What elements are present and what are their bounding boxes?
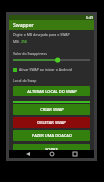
staticText: CRIAR SWAP (40, 107, 64, 112)
staticText: MB: (13, 39, 21, 44)
staticText: 6:49 (86, 15, 93, 20)
staticText: Digite o MB desejado para o SWAP (13, 32, 70, 37)
button[interactable]: Back (23, 150, 33, 158)
staticText: Swapper (13, 22, 34, 29)
staticText: 256 (21, 39, 28, 44)
staticText: ALTERAR LOCAL DO SWAP (27, 89, 77, 94)
button[interactable]: Recents (70, 150, 80, 158)
button[interactable]: SOBRE (13, 144, 90, 155)
button[interactable]: CRIAR SWAP (13, 104, 90, 115)
staticText: DELETAR SWAP (37, 120, 66, 125)
staticText: Valor do Swappiness (13, 51, 47, 56)
staticText: Ativar SWAP ao iniciar o Android (19, 67, 72, 72)
staticText: FAZER UMA DOACAO (32, 133, 72, 138)
button[interactable]: FAZER UMA DOACAO (13, 130, 90, 141)
button[interactable]: Swappiness slider (13, 58, 90, 62)
button[interactable]: Home (47, 150, 57, 158)
staticText: Local do Swap (13, 78, 37, 83)
button[interactable]: Ativar SWAP ao iniciar o Android (13, 67, 72, 72)
button[interactable]: DELETAR SWAP (13, 117, 90, 128)
button[interactable]: ALTERAR LOCAL DO SWAP (13, 86, 90, 96)
staticText: SOBRE (45, 147, 58, 152)
